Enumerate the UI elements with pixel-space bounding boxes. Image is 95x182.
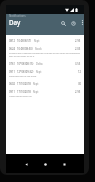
staticText: 0911 (9, 90, 15, 94)
staticText: 10*08 (08:15) (17, 62, 34, 66)
button[interactable]: 0602 (6, 80, 84, 88)
staticText: 10:08 (08:50) (17, 47, 33, 51)
staticText: 3.55 (75, 62, 81, 66)
staticText: 2.05 (75, 47, 81, 51)
staticText: 0602 (9, 82, 15, 86)
button[interactable]: More options (80, 19, 84, 26)
staticText: 2.95 (75, 90, 81, 94)
staticText: 17/10/2018 (17, 82, 31, 86)
staticText: 10:08 (8:57) (17, 39, 32, 43)
staticText: Rcpt (34, 39, 40, 43)
staticText: Day (9, 18, 21, 26)
staticText: Rcpt (33, 90, 39, 94)
button[interactable]: 0812 (6, 37, 84, 45)
staticText: Notifications (9, 14, 26, 18)
staticText: 0911 (9, 70, 15, 74)
staticText: 2.95 (75, 39, 81, 43)
staticText: Lorem ipsum dolor sit (9, 95, 32, 98)
button[interactable]: 0911 (6, 88, 84, 100)
button[interactable]: Back (22, 160, 30, 168)
button[interactable]: 0624 (6, 45, 84, 60)
staticText: Delta (36, 62, 43, 66)
staticText: 12*08 (09:32) (17, 70, 34, 74)
staticText: Product was a deposit thousands of draft… (9, 52, 81, 58)
staticText: 12 (78, 70, 81, 74)
staticText: 17/10/2018 (17, 90, 31, 94)
staticText: 0761 (9, 62, 15, 66)
button[interactable]: Recents (60, 160, 68, 168)
button[interactable]: Home (41, 160, 49, 168)
staticText: 0812 (9, 39, 15, 43)
button[interactable]: 0761 (6, 60, 84, 68)
button[interactable]: 0911 (6, 68, 84, 80)
staticText: 30 (78, 82, 81, 86)
staticText: 0624 (9, 47, 15, 51)
staticText: Stock (35, 47, 42, 51)
button[interactable]: History (70, 20, 76, 26)
staticText: Rcpt (36, 70, 42, 74)
staticText: Rcpt (33, 82, 39, 86)
button[interactable]: Search (60, 20, 66, 26)
staticText: Stationed part of the ticker (9, 75, 37, 78)
